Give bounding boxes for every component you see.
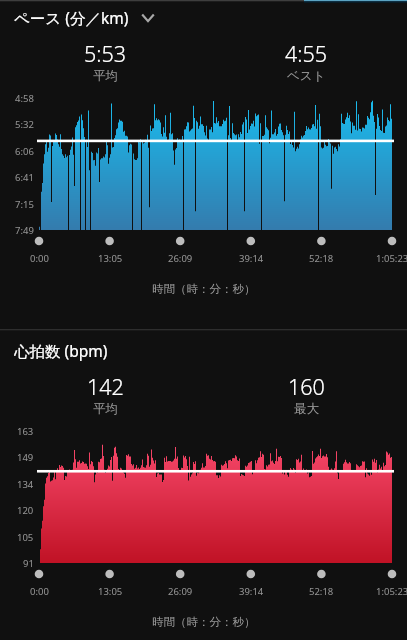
staticText: 6:06	[15, 145, 34, 158]
button[interactable]: ペース (分／km)	[14, 6, 167, 29]
staticText: 5:32	[15, 118, 34, 131]
staticText: 7:15	[15, 198, 34, 211]
staticText: 時間（時：分：秒）	[152, 282, 256, 296]
staticText: 4:58	[15, 92, 34, 105]
staticText: 26:09	[168, 585, 193, 598]
staticText: 120	[17, 504, 34, 517]
staticText: 149	[17, 451, 34, 464]
staticText: 134	[17, 478, 34, 491]
staticText: 1:05:23	[376, 252, 407, 265]
staticText: 0:00	[30, 585, 49, 598]
staticText: 26:09	[168, 252, 193, 265]
staticText: 105	[17, 531, 34, 544]
staticText: 6:41	[15, 171, 34, 184]
staticText: 7:49	[15, 224, 34, 237]
staticText: ペース (分／km)	[14, 7, 129, 28]
staticText: 13:05	[98, 252, 123, 265]
staticText: 心拍数 (bpm)	[14, 340, 108, 361]
staticText: 160	[288, 372, 325, 401]
staticText: 142	[87, 372, 124, 401]
staticText: 5:53	[84, 39, 127, 68]
button[interactable]: 心拍数 (bpm)	[14, 339, 108, 362]
staticText: 13:05	[98, 585, 123, 598]
staticText: 52:18	[309, 252, 334, 265]
staticText: 平均	[93, 68, 118, 84]
staticText: 平均	[93, 401, 118, 417]
staticText: 91	[23, 557, 34, 570]
staticText: 39:14	[239, 585, 264, 598]
staticText: 1:05:23	[376, 585, 407, 598]
staticText: 時間（時：分：秒）	[152, 615, 256, 629]
other: Change metric	[129, 6, 167, 29]
staticText: 4:55	[285, 39, 328, 68]
staticText: 52:18	[309, 585, 334, 598]
staticText: 最大	[294, 401, 319, 417]
staticText: ベスト	[287, 68, 326, 84]
staticText: 163	[17, 425, 34, 438]
staticText: 0:00	[30, 252, 49, 265]
staticText: 39:14	[239, 252, 264, 265]
